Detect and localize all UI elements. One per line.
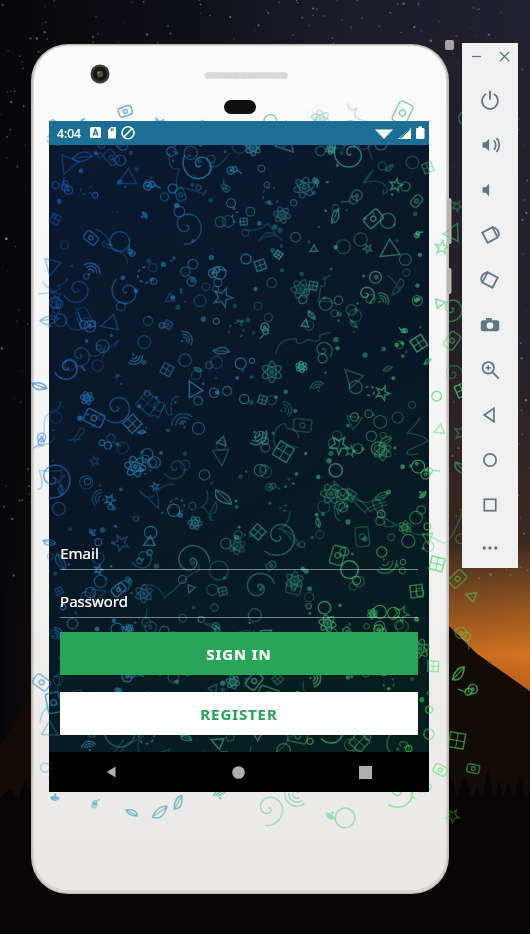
staticText: REGISTER (200, 704, 278, 724)
button[interactable]: Email (60, 543, 418, 570)
staticText: Email (60, 543, 99, 563)
staticText: Password (60, 591, 128, 611)
button[interactable]: Rotate right (462, 257, 518, 302)
button[interactable]: SIGN IN (60, 632, 418, 675)
button[interactable]: Power (462, 77, 518, 122)
button[interactable]: Close (490, 43, 518, 69)
button[interactable]: Zoom (462, 347, 518, 392)
button[interactable]: Volume down (462, 167, 518, 212)
button[interactable]: More (462, 527, 518, 568)
button[interactable]: Minimize (462, 43, 490, 69)
button[interactable]: Password (60, 591, 418, 618)
button[interactable]: Overview (462, 482, 518, 527)
staticText: 4:04 (57, 125, 81, 141)
button[interactable]: Recent apps (302, 752, 429, 792)
button[interactable]: Back (49, 752, 175, 792)
button[interactable]: Home (175, 752, 302, 792)
button[interactable]: Back (462, 392, 518, 437)
staticText: SIGN IN (206, 644, 272, 664)
button[interactable]: Rotate left (462, 212, 518, 257)
button[interactable]: Volume up (462, 122, 518, 167)
button[interactable]: REGISTER (60, 692, 418, 735)
button[interactable]: Screenshot (462, 302, 518, 347)
button[interactable]: Home (462, 437, 518, 482)
